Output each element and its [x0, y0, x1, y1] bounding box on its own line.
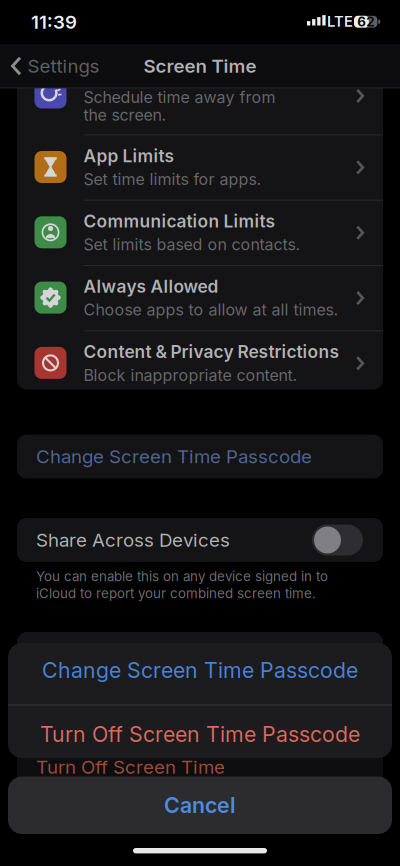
button[interactable]: Communication Limits — [17, 200, 383, 265]
staticText: Share Across Devices — [36, 529, 230, 551]
staticText: Cancel — [164, 793, 236, 818]
staticText: 62 — [357, 14, 374, 29]
button[interactable]: Turn Off Screen Time Passcode — [8, 708, 392, 760]
staticText: Always Allowed — [83, 276, 218, 297]
staticText: Turn Off Screen Time Passcode — [40, 722, 360, 747]
staticText: Communication Limits — [83, 211, 275, 231]
staticText: iCloud to report your combined screen ti… — [36, 586, 316, 601]
staticText: Change Screen Time Passcode — [36, 445, 312, 467]
staticText: Content & Privacy Restrictions — [83, 342, 339, 362]
staticText: You can enable this on any device signed… — [36, 569, 328, 584]
button[interactable]: Content & Privacy Restrictions — [17, 330, 383, 396]
staticText: Set time limits for apps. — [83, 170, 261, 189]
staticText: Screen Time — [143, 55, 256, 77]
button[interactable]: Always Allowed — [17, 265, 383, 330]
button[interactable]: Share Across Devices — [312, 524, 363, 555]
staticText: Set limits based on contacts. — [83, 235, 300, 254]
staticText: the screen. — [83, 105, 166, 124]
staticText: Change Screen Time Passcode — [42, 658, 358, 683]
staticText: App Limits — [83, 146, 174, 166]
staticText: Settings — [27, 55, 99, 77]
staticText: Turn Off Screen Time — [36, 756, 225, 778]
button[interactable]: Back — [0, 44, 99, 88]
button[interactable]: Change Screen Time Passcode — [8, 639, 392, 701]
staticText: Choose apps to allow at all times. — [83, 300, 338, 319]
staticText: 11:39 — [31, 11, 77, 33]
button[interactable]: App Limits — [17, 134, 383, 200]
staticText: Block inappropriate content. — [83, 366, 297, 385]
staticText: LTE — [327, 13, 353, 30]
button[interactable]: Cancel — [8, 776, 392, 834]
staticText: Schedule time away from — [83, 88, 275, 107]
button[interactable]: Change Screen Time Passcode — [17, 434, 383, 478]
button[interactable]: Downtime — [17, 69, 383, 134]
button[interactable]: Turn Off Screen Time — [17, 745, 383, 789]
